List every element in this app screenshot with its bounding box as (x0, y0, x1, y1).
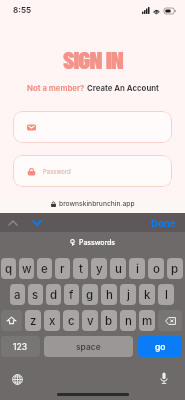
button[interactable]: Password (13, 155, 172, 187)
button[interactable]: v (82, 310, 98, 331)
button[interactable] (13, 111, 172, 143)
button[interactable]: e (37, 258, 52, 279)
staticText: z (30, 314, 37, 328)
staticText: SIGN IN (63, 44, 123, 73)
staticText: space (76, 342, 101, 352)
button[interactable]: f (64, 284, 79, 305)
button[interactable]: space (44, 336, 133, 357)
button[interactable]: i (129, 258, 145, 279)
button[interactable]: n (120, 310, 136, 331)
button[interactable]: j (120, 284, 136, 305)
button[interactable]: Change keyboard (9, 371, 26, 388)
button[interactable]: p (167, 258, 183, 279)
staticText: f (69, 288, 74, 302)
staticText: 8:55 (13, 5, 32, 15)
staticText: Password (43, 168, 71, 175)
staticText: s (32, 288, 39, 302)
button[interactable]: y (91, 258, 107, 279)
button[interactable]: brownskinbrunchin.app (51, 200, 135, 208)
button[interactable]: t (73, 258, 88, 279)
button[interactable]: Done (145, 214, 185, 232)
staticText: c (68, 314, 75, 328)
staticText: 123 (13, 342, 28, 352)
staticText: u (115, 262, 122, 276)
staticText: Create An Account (87, 83, 159, 92)
button[interactable]: Create An Account (87, 83, 159, 92)
staticText: i (136, 262, 139, 276)
staticText: h (106, 288, 113, 302)
button[interactable]: l (158, 284, 174, 305)
button[interactable]: m (139, 310, 155, 331)
staticText: Passwords (79, 238, 115, 246)
staticText: p (171, 262, 179, 276)
staticText: Not a member? (27, 83, 87, 92)
button[interactable]: c (63, 310, 79, 331)
staticText: q (5, 262, 13, 276)
staticText: r (60, 262, 65, 276)
button[interactable]: d (46, 284, 61, 305)
staticText: o (153, 262, 160, 276)
staticText: x (49, 314, 56, 328)
button[interactable]: Passwords (70, 238, 115, 246)
button[interactable]: o (148, 258, 164, 279)
staticText: Done (151, 218, 176, 230)
button[interactable]: k (139, 284, 155, 305)
staticText: l (165, 288, 168, 302)
button[interactable]: Dictate (155, 369, 172, 386)
button[interactable]: x (44, 310, 60, 331)
button[interactable]: g (82, 284, 98, 305)
button[interactable]: Previous field (4, 214, 21, 231)
staticText: t (79, 262, 83, 276)
staticText: n (125, 314, 132, 328)
button[interactable]: b (101, 310, 117, 331)
button[interactable]: s (28, 284, 43, 305)
button[interactable]: a (10, 284, 25, 305)
button[interactable]: Next field (28, 214, 45, 231)
button[interactable]: 123 (1, 336, 40, 357)
staticText: b (105, 314, 113, 328)
staticText: m (142, 314, 153, 328)
staticText: brownskinbrunchin.app (59, 200, 135, 208)
staticText: a (14, 288, 21, 302)
button[interactable]: r (55, 258, 70, 279)
button[interactable]: q (1, 258, 16, 279)
button[interactable]: Shift (1, 310, 22, 331)
staticText: y (96, 262, 103, 276)
button[interactable]: z (25, 310, 41, 331)
staticText: j (127, 288, 130, 302)
button[interactable]: h (101, 284, 117, 305)
staticText: v (87, 314, 94, 328)
staticText: go (155, 342, 166, 352)
button[interactable]: Delete (158, 310, 182, 331)
staticText: d (50, 288, 58, 302)
staticText: k (144, 288, 151, 302)
staticText: g (86, 288, 94, 302)
button[interactable]: go (138, 336, 182, 357)
staticText: w (22, 262, 32, 276)
staticText: e (41, 262, 48, 276)
button[interactable]: u (110, 258, 126, 279)
button[interactable]: w (19, 258, 34, 279)
